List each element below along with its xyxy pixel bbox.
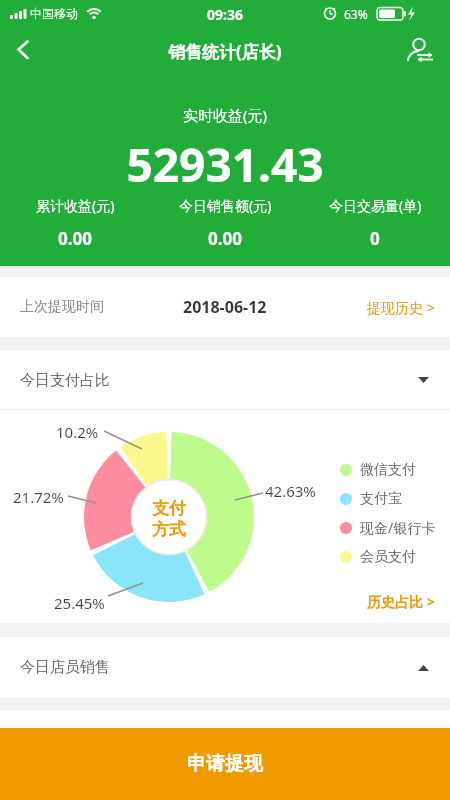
staticText: 0.00 (58, 227, 92, 250)
staticText: 今日支付占比 (20, 371, 110, 390)
staticText: 今日店员销售 (20, 658, 110, 677)
staticText: 42.63% (265, 481, 316, 501)
staticText: 销售统计(店长) (168, 40, 282, 63)
button[interactable]: 申请提现 (0, 728, 450, 800)
staticText: 会员支付 (360, 548, 416, 566)
button[interactable]: 支付宝 (340, 484, 402, 513)
button[interactable] (406, 28, 450, 75)
staticText: 21.72% (13, 487, 64, 507)
staticText: 中国移动 (30, 6, 78, 21)
staticText: 2018-06-12 (183, 296, 267, 318)
button[interactable] (0, 28, 44, 75)
button[interactable]: 现金/银行卡 (340, 513, 436, 542)
staticText: 实时收益(元) (0, 105, 450, 125)
staticText: 0 (370, 227, 380, 250)
staticText: 方式 (152, 519, 186, 540)
staticText: 累计收益(元) (36, 196, 115, 215)
staticText: 支付 (152, 498, 186, 519)
button[interactable]: 上次提现时间 (0, 277, 450, 337)
staticText: 上次提现时间 (20, 298, 104, 316)
staticText: 今日交易量(单) (329, 196, 422, 215)
button[interactable]: 会员支付 (340, 542, 416, 571)
button[interactable]: 累计收益(元) (0, 196, 150, 250)
staticText: 现金/银行卡 (360, 518, 436, 537)
button[interactable]: 历史占比 > (367, 592, 435, 611)
staticText: 10.2% (56, 422, 99, 442)
staticText: 今日销售额(元) (179, 196, 272, 215)
staticText: 支付宝 (360, 490, 402, 508)
button[interactable]: 今日支付占比 (0, 350, 450, 410)
button[interactable]: 今日销售额(元) (150, 196, 300, 250)
button[interactable]: 微信支付 (340, 455, 416, 484)
staticText: 52931.43 (0, 133, 450, 196)
button[interactable]: 今日店员销售 (0, 637, 450, 698)
staticText: 25.45% (54, 593, 105, 613)
staticText: 63% (344, 6, 368, 22)
staticText: 申请提现 (187, 752, 263, 776)
staticText: 微信支付 (360, 461, 416, 479)
staticText: 0.00 (208, 227, 242, 250)
staticText: 提现历史 > (367, 298, 435, 317)
staticText: 09:36 (207, 5, 243, 24)
button[interactable]: 今日交易量(单) (300, 196, 450, 250)
